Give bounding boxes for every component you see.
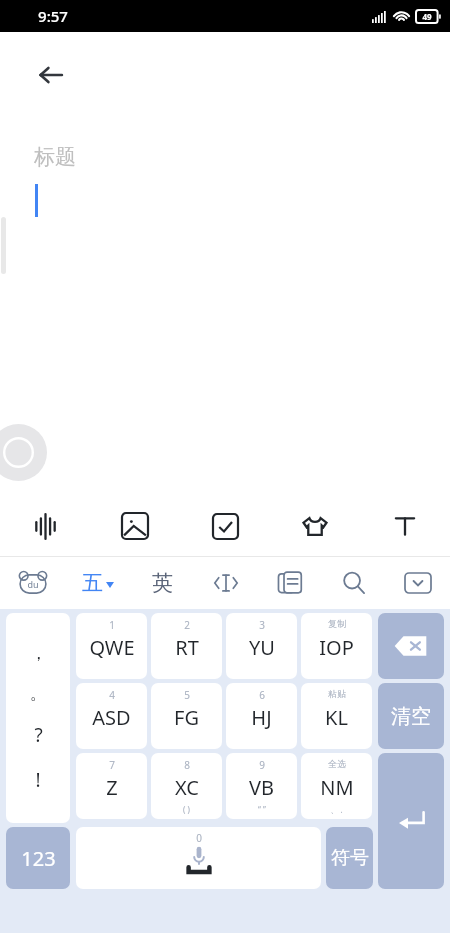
staticText: FG <box>174 704 199 731</box>
staticText: 符号 <box>331 846 369 870</box>
staticText: ( ) <box>183 804 190 815</box>
button[interactable]: Move cursor <box>194 557 258 609</box>
staticText: 3 <box>259 618 265 632</box>
staticText: ! <box>35 767 41 793</box>
button[interactable]: 符号 <box>326 827 373 889</box>
button[interactable]: Image <box>90 496 180 556</box>
button[interactable]: Record <box>0 424 47 481</box>
staticText: 2 <box>184 618 190 632</box>
button[interactable]: 8 <box>151 753 222 819</box>
staticText: NM <box>320 774 354 801</box>
staticText: 123 <box>21 845 56 872</box>
button[interactable]: 1 <box>76 613 147 679</box>
staticText: 7 <box>109 758 115 772</box>
staticText: RT <box>175 634 199 661</box>
button[interactable]: Hide keyboard <box>386 557 450 609</box>
staticText: 9:57 <box>38 6 68 26</box>
staticText: 8 <box>184 758 190 772</box>
button[interactable]: Search <box>322 557 386 609</box>
button[interactable]: 复制 <box>301 613 372 679</box>
button[interactable]: 3 <box>226 613 297 679</box>
staticText: 英 <box>152 570 173 596</box>
button[interactable]: Baidu input <box>0 557 65 609</box>
staticText: 0 <box>196 831 202 845</box>
button[interactable]: Back <box>30 54 72 96</box>
button[interactable]: Text format <box>360 496 450 556</box>
staticText: 49 <box>422 11 432 22</box>
staticText: ASD <box>92 704 131 731</box>
button[interactable]: Voice <box>0 496 90 556</box>
staticText: 清空 <box>391 704 431 729</box>
button[interactable]: Checklist <box>180 496 270 556</box>
staticText: 标题 <box>34 144 76 170</box>
staticText: 五 <box>82 570 103 596</box>
button[interactable]: ， <box>6 613 70 823</box>
button[interactable]: Backspace <box>378 613 444 679</box>
staticText: 复制 <box>328 618 346 629</box>
staticText: 6 <box>259 688 265 702</box>
staticText: YU <box>249 634 275 661</box>
button[interactable]: 6 <box>226 683 297 749</box>
staticText: Z <box>106 774 118 801</box>
button[interactable]: 英 <box>130 557 194 609</box>
button[interactable]: 9 <box>226 753 297 819</box>
button[interactable]: 4 <box>76 683 147 749</box>
button[interactable]: 2 <box>151 613 222 679</box>
staticText: du <box>27 578 39 590</box>
staticText: 9 <box>259 758 265 772</box>
staticText: IOP <box>319 634 354 661</box>
staticText: 。 <box>30 683 47 704</box>
button[interactable]: Space <box>76 827 321 889</box>
button[interactable]: Theme <box>270 496 360 556</box>
staticText: 粘贴 <box>328 688 346 699</box>
staticText: 4 <box>109 688 115 702</box>
staticText: 5 <box>184 688 190 702</box>
button[interactable]: Enter <box>378 753 444 889</box>
button[interactable]: 123 <box>6 827 70 889</box>
button[interactable]: 五 <box>65 557 130 609</box>
button[interactable]: 全选 <box>301 753 372 819</box>
staticText: HJ <box>251 704 272 731</box>
staticText: “ ” <box>258 804 266 815</box>
staticText: ? <box>34 722 43 748</box>
staticText: ， <box>30 643 47 664</box>
staticText: 、 . <box>330 804 343 815</box>
staticText: XC <box>175 774 199 801</box>
staticText: QWE <box>89 634 135 661</box>
staticText: KL <box>325 704 348 731</box>
button[interactable]: 粘贴 <box>301 683 372 749</box>
button[interactable]: 清空 <box>378 683 444 749</box>
staticText: VB <box>249 774 274 801</box>
staticText: 全选 <box>328 758 346 769</box>
button[interactable]: Clipboard <box>258 557 322 609</box>
button[interactable]: 7 <box>76 753 147 819</box>
button[interactable]: 5 <box>151 683 222 749</box>
staticText: 1 <box>109 618 115 632</box>
